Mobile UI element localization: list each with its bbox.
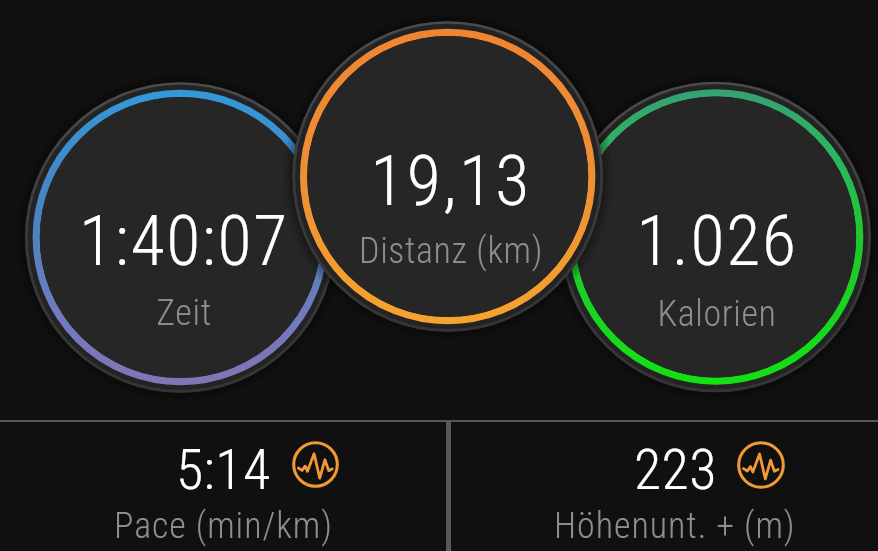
staticText: Kalorien <box>657 293 777 335</box>
other: Activity chart <box>737 441 785 489</box>
button[interactable]: 19,13 <box>301 130 601 280</box>
button[interactable]: 223 <box>475 421 875 551</box>
staticText: Pace (min/km) <box>114 505 333 547</box>
staticText: 223 <box>634 437 717 499</box>
button[interactable]: 1.026 <box>567 190 867 340</box>
staticText: Zeit <box>156 292 212 334</box>
staticText: 19,13 <box>370 140 532 220</box>
staticText: 1.026 <box>636 200 798 280</box>
staticText: 1:40:07 <box>79 200 289 280</box>
button[interactable]: 5:14 <box>23 421 423 551</box>
staticText: Distanz (km) <box>359 230 543 272</box>
staticText: Höhenunt. + (m) <box>554 505 796 547</box>
button[interactable]: 1:40:07 <box>34 190 334 340</box>
staticText: 5:14 <box>176 437 271 499</box>
other: Activity chart <box>292 441 339 488</box>
